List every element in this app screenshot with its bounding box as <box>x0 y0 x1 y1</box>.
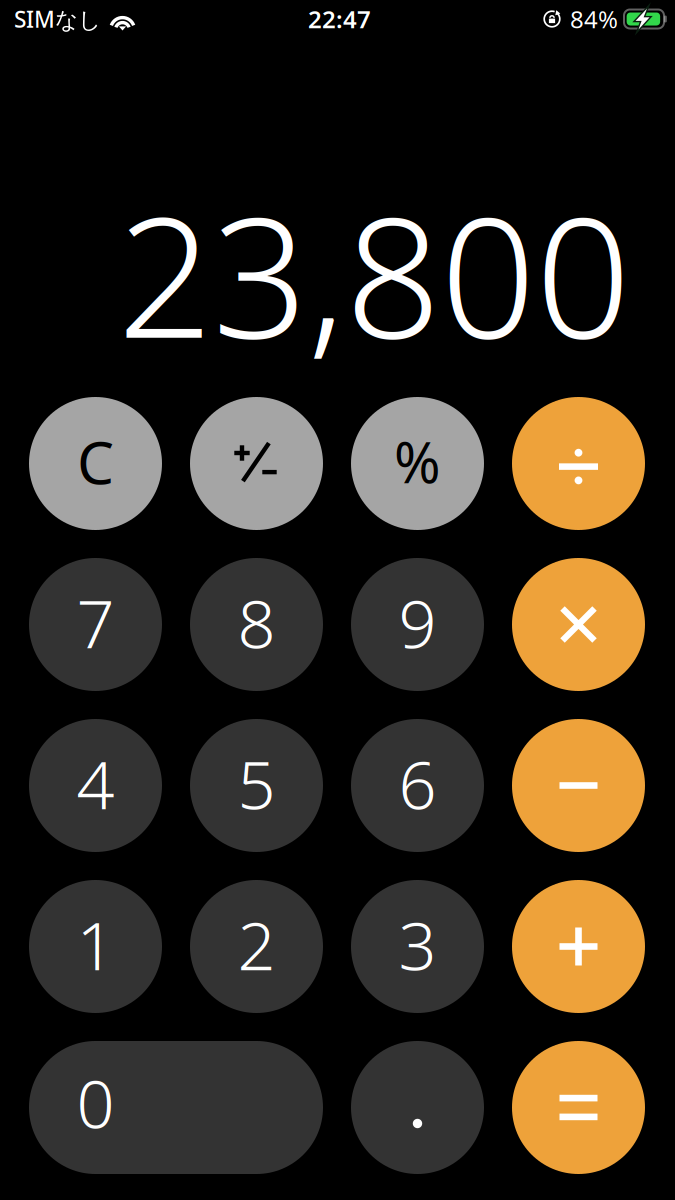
button[interactable]: 4 <box>29 719 162 852</box>
staticText: 2 <box>237 900 275 989</box>
button[interactable]: 3 <box>351 880 484 1013</box>
staticText: 0 <box>76 1058 114 1147</box>
button[interactable]: Equals <box>512 1041 645 1174</box>
staticText: C <box>77 422 114 500</box>
staticText: 6 <box>398 739 436 828</box>
staticText: 8 <box>237 578 275 667</box>
button[interactable]: C <box>29 397 162 530</box>
staticText: 3 <box>398 900 436 989</box>
staticText: 84% <box>570 3 618 35</box>
button[interactable]: 6 <box>351 719 484 852</box>
button[interactable]: Subtract <box>512 719 645 852</box>
button[interactable]: Divide <box>512 397 645 530</box>
button[interactable]: 7 <box>29 558 162 691</box>
staticText: 22:47 <box>308 3 371 35</box>
staticText: 7 <box>76 578 114 667</box>
button[interactable]: Decimal point <box>351 1041 484 1174</box>
staticText: % <box>394 424 441 499</box>
staticText: SIMなし <box>14 4 101 34</box>
button[interactable]: Plus minus <box>190 397 323 530</box>
button[interactable]: 5 <box>190 719 323 852</box>
staticText: 4 <box>76 739 114 828</box>
button[interactable]: 2 <box>190 880 323 1013</box>
button[interactable]: 8 <box>190 558 323 691</box>
staticText: 1 <box>76 900 114 989</box>
button[interactable]: 9 <box>351 558 484 691</box>
button[interactable]: % <box>351 397 484 530</box>
button[interactable]: 1 <box>29 880 162 1013</box>
staticText: 5 <box>237 739 275 828</box>
button[interactable]: Add <box>512 880 645 1013</box>
button[interactable]: 0 <box>29 1041 323 1174</box>
staticText: 23,800 <box>117 162 630 384</box>
button[interactable]: Multiply <box>512 558 645 691</box>
staticText: 9 <box>398 578 436 667</box>
